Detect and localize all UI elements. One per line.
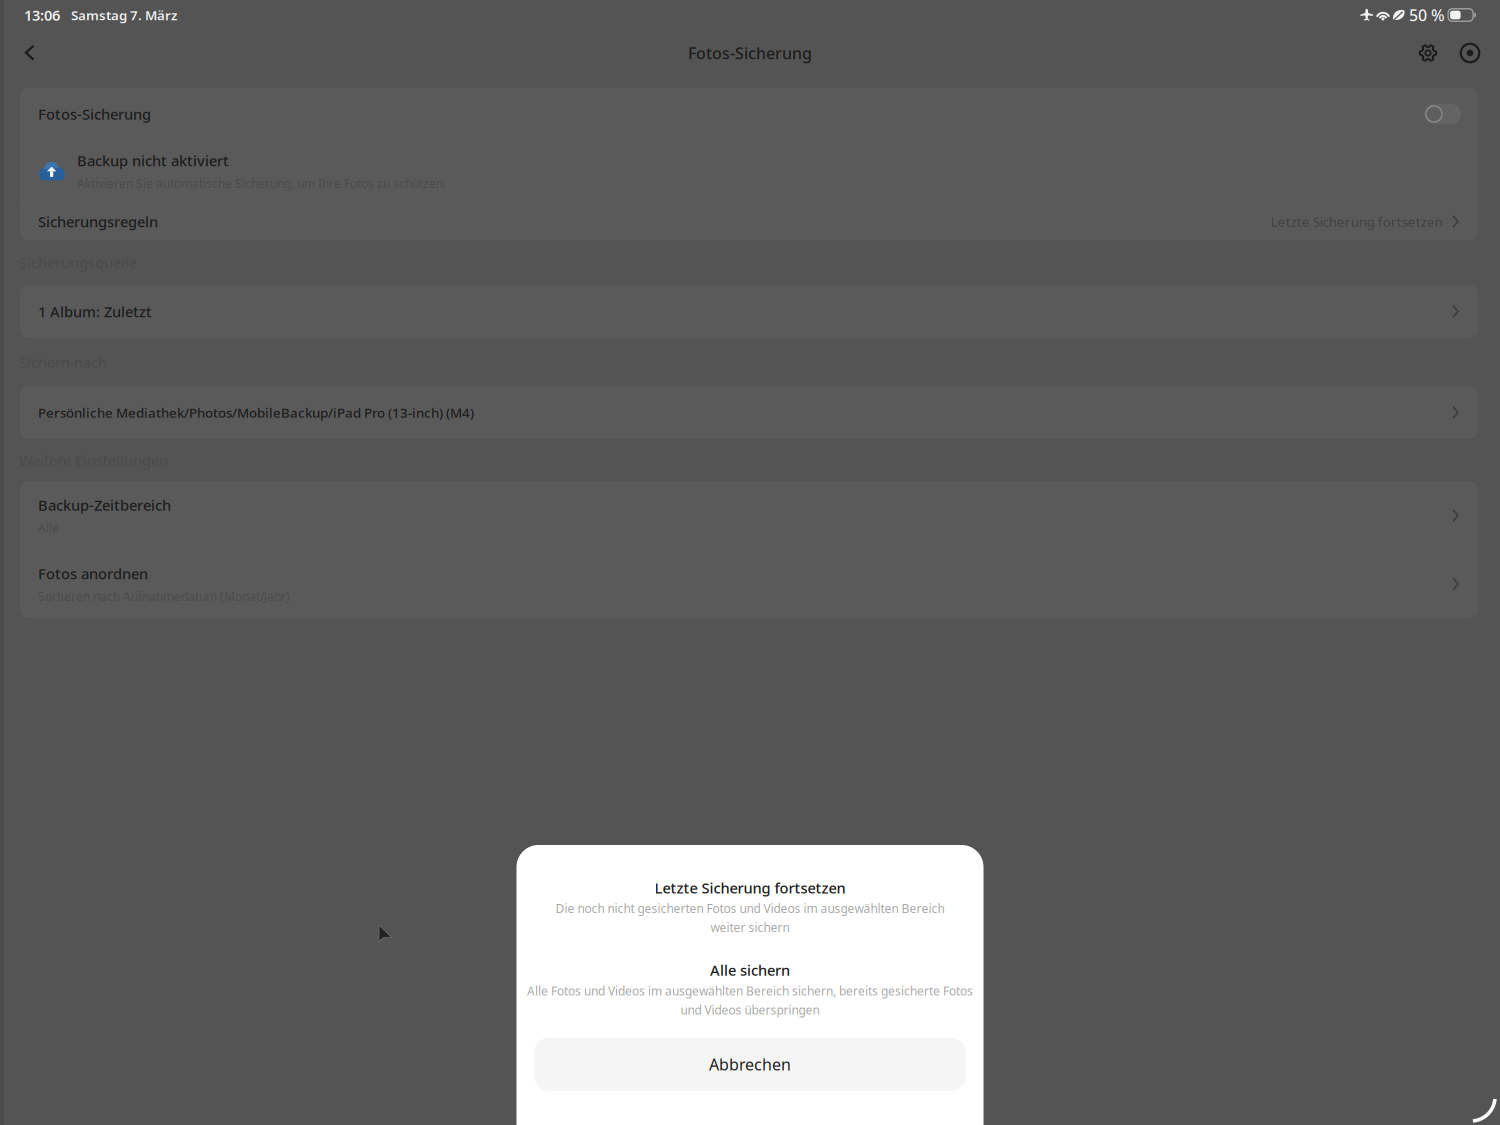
button[interactable]: Letzte Sicherung fortsetzen <box>516 878 983 935</box>
button[interactable]: Einstellungen <box>1408 30 1448 76</box>
button[interactable]: Backup-Zeitbereich <box>20 481 1478 550</box>
staticText: Aktivieren Sie automatische Sicherung, u… <box>77 175 446 191</box>
button[interactable]: Persönliche Mediathek/Photos/MobileBacku… <box>20 386 1478 439</box>
staticText: Fotos anordnen <box>38 564 148 583</box>
staticText: Sicherungsregeln <box>38 212 158 231</box>
button[interactable]: Fotos anordnen <box>20 550 1478 618</box>
staticText: Sortieren nach Aufnahmedatum (Monat/Jahr… <box>38 588 290 604</box>
staticText: Alle sichern <box>710 960 790 980</box>
button[interactable]: Sicherungsregeln <box>20 203 1478 240</box>
staticText: Alle Fotos und Videos im ausgewählten Be… <box>527 983 973 999</box>
staticText: Fotos-Sicherung <box>38 104 151 124</box>
button[interactable]: Abbrechen <box>534 1038 965 1091</box>
staticText: 50 % <box>1409 4 1445 26</box>
staticText: Fotos-Sicherung <box>688 42 812 64</box>
staticText: weiter sichern <box>710 919 789 935</box>
button[interactable]: 1 Album: Zuletzt <box>20 285 1478 338</box>
staticText: Letzte Sicherung fortsetzen <box>654 878 845 897</box>
staticText: Alle <box>38 520 59 536</box>
staticText: und Videos überspringen <box>680 1002 819 1018</box>
button[interactable]: Fotos-Sicherung aktivieren <box>1420 97 1465 131</box>
button[interactable]: Zurück <box>8 30 52 76</box>
button[interactable]: Aufnehmen <box>1450 30 1490 76</box>
staticText: Backup-Zeitbereich <box>38 495 171 515</box>
staticText: Samstag 7. März <box>71 6 177 24</box>
staticText: Backup nicht aktiviert <box>77 151 229 170</box>
staticText: Letzte Sicherung fortsetzen <box>1271 213 1443 230</box>
staticText: 1 Album: Zuletzt <box>38 302 152 321</box>
button[interactable]: Alle sichern <box>516 960 983 1018</box>
staticText: Die noch nicht gesicherten Fotos und Vid… <box>555 900 944 916</box>
staticText: Persönliche Mediathek/Photos/MobileBacku… <box>38 404 474 421</box>
staticText: 13:06 <box>24 5 60 25</box>
staticText: Abbrechen <box>709 1054 791 1075</box>
